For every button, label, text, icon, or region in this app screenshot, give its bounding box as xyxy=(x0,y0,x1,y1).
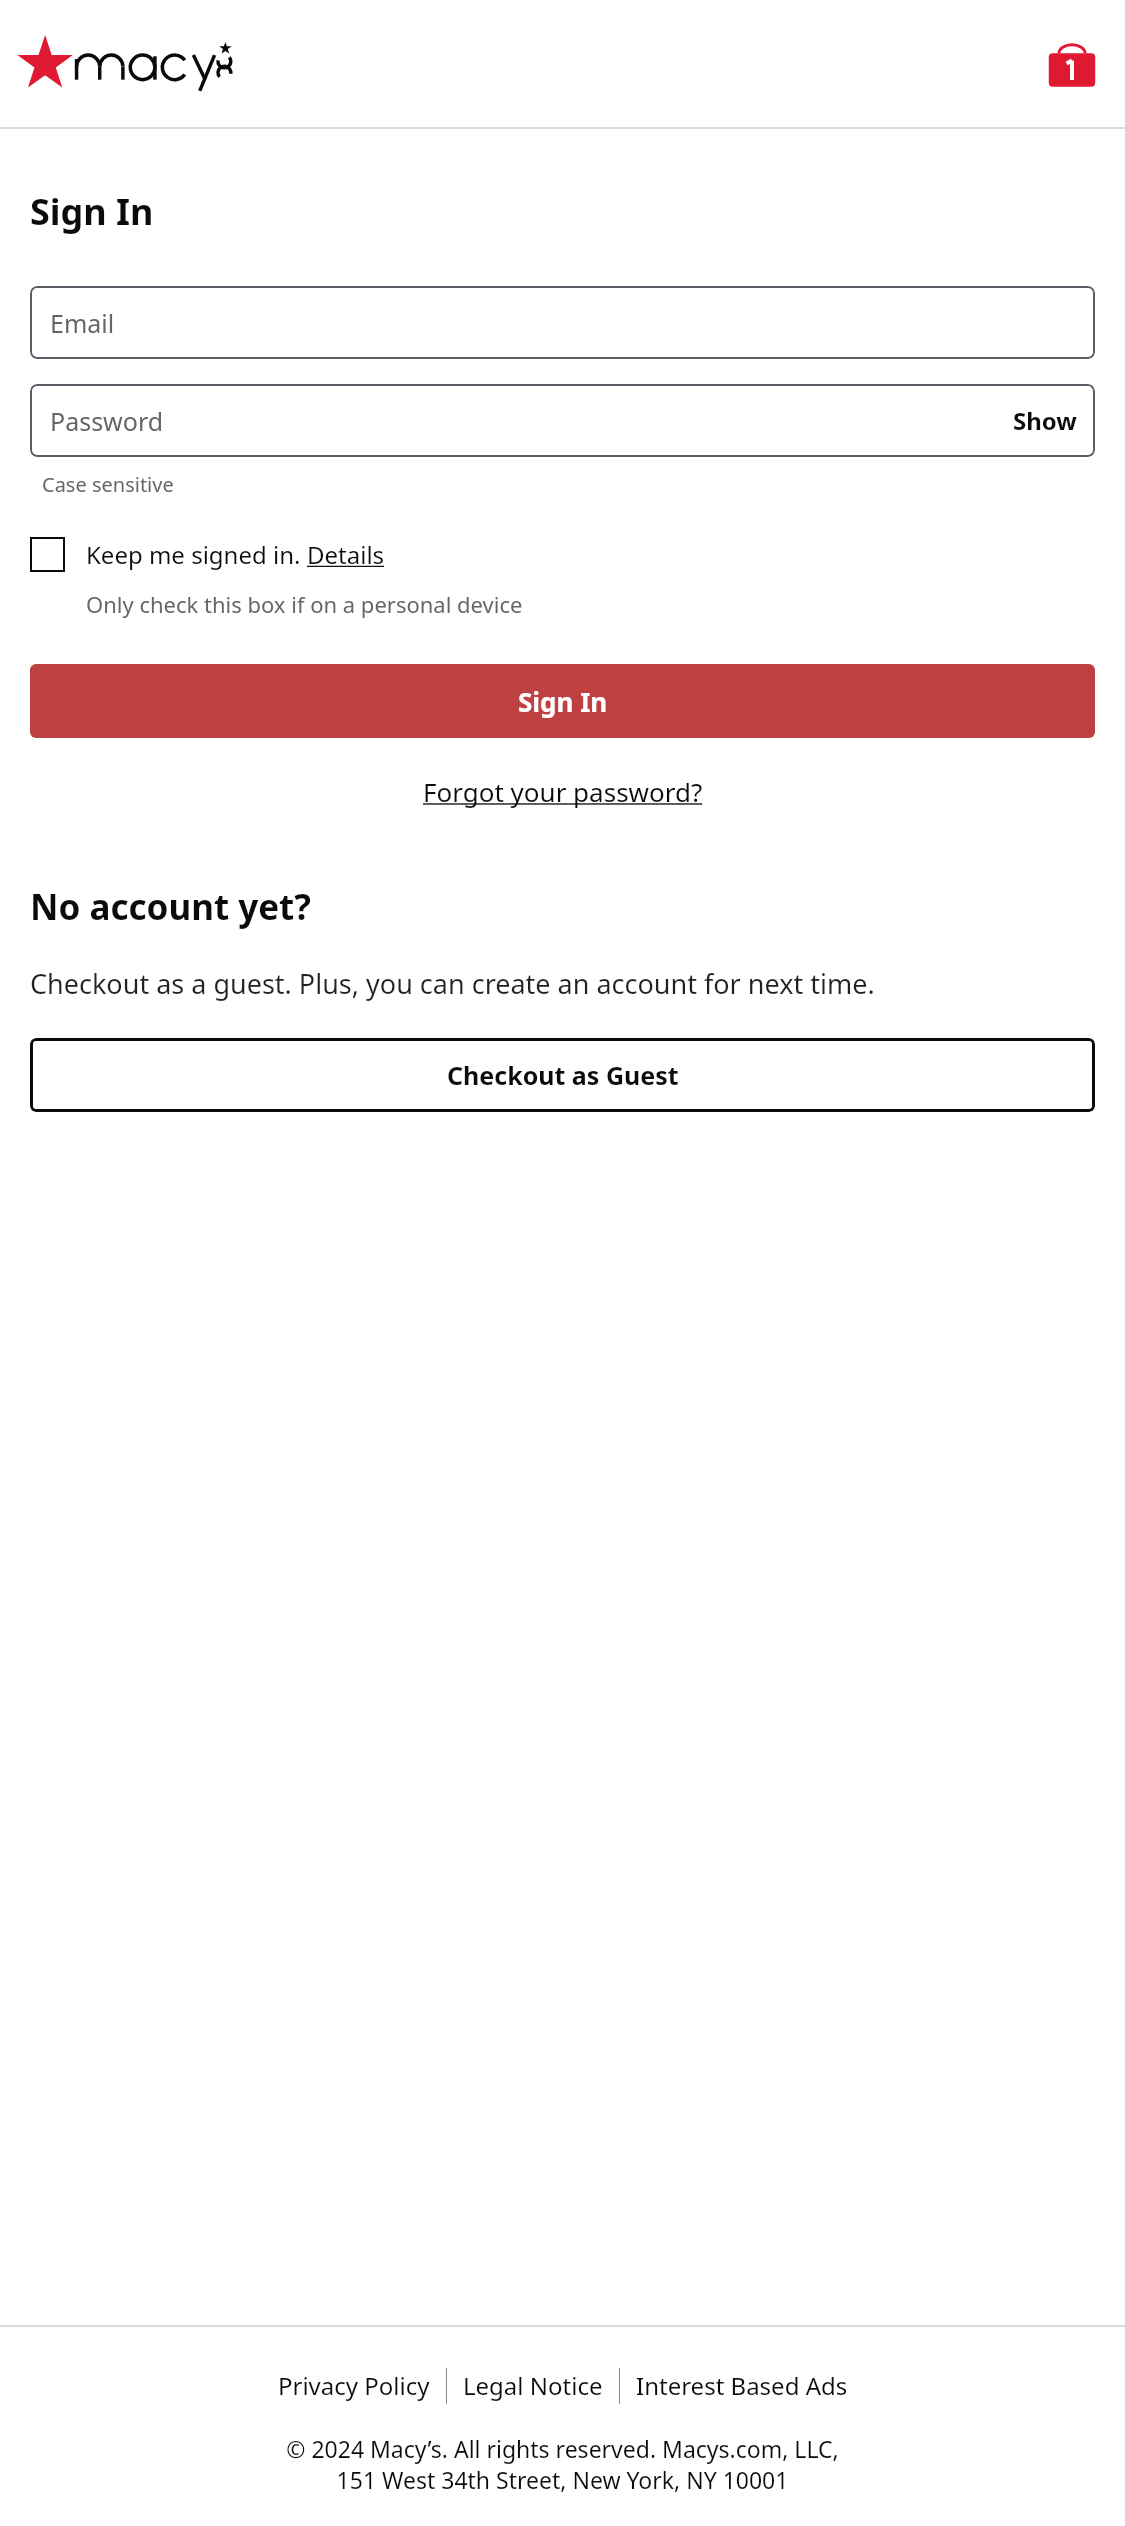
button[interactable]: Macy's home xyxy=(16,36,231,92)
button[interactable]: Checkout as Guest xyxy=(30,1038,1095,1112)
button[interactable]: Interest Based Ads xyxy=(620,2363,864,2408)
staticText: Sign In xyxy=(518,684,608,719)
button[interactable]: Privacy Policy xyxy=(262,2363,446,2408)
button[interactable]: Legal Notice xyxy=(447,2363,619,2408)
staticText: Only check this box if on a personal dev… xyxy=(86,589,523,619)
button[interactable]: Details xyxy=(307,538,385,571)
button[interactable]: Password xyxy=(30,384,1095,457)
button[interactable]: Sign In xyxy=(30,664,1095,738)
button[interactable]: Keep me signed in. xyxy=(30,537,1095,572)
staticText: Checkout as Guest xyxy=(447,1058,679,1092)
button[interactable]: Show xyxy=(995,392,1095,449)
staticText: Interest Based Ads xyxy=(636,2369,848,2402)
staticText: © 2024 Macy’s. All rights reserved. Macy… xyxy=(286,2433,839,2496)
staticText: Legal Notice xyxy=(463,2369,603,2402)
staticText: Details xyxy=(307,538,385,571)
button[interactable]: Shopping bag, 1 item xyxy=(1045,37,1099,91)
staticText: No account yet? xyxy=(30,883,311,931)
staticText: Case sensitive xyxy=(42,471,174,498)
button[interactable]: Forgot your password? xyxy=(409,768,717,815)
staticText: Checkout as a guest. Plus, you can creat… xyxy=(30,965,875,1002)
staticText: Privacy Policy xyxy=(278,2369,430,2402)
staticText: Show xyxy=(1013,404,1077,437)
staticText: Email xyxy=(50,306,115,340)
staticText: Forgot your password? xyxy=(423,774,703,809)
button[interactable]: Email xyxy=(30,286,1095,359)
staticText: Sign In xyxy=(30,187,154,236)
staticText: Password xyxy=(50,404,164,438)
staticText: Keep me signed in. xyxy=(86,538,307,571)
